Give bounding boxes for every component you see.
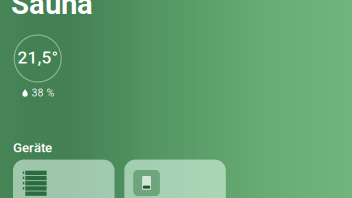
staticText: 21,5° — [18, 47, 59, 68]
staticText: Sauna — [11, 0, 93, 21]
staticText: Geräte — [13, 140, 52, 156]
staticText: 38 % — [31, 87, 54, 99]
button[interactable]: Lichtschalter — [124, 160, 226, 198]
button[interactable]: Jalousie — [13, 160, 114, 198]
